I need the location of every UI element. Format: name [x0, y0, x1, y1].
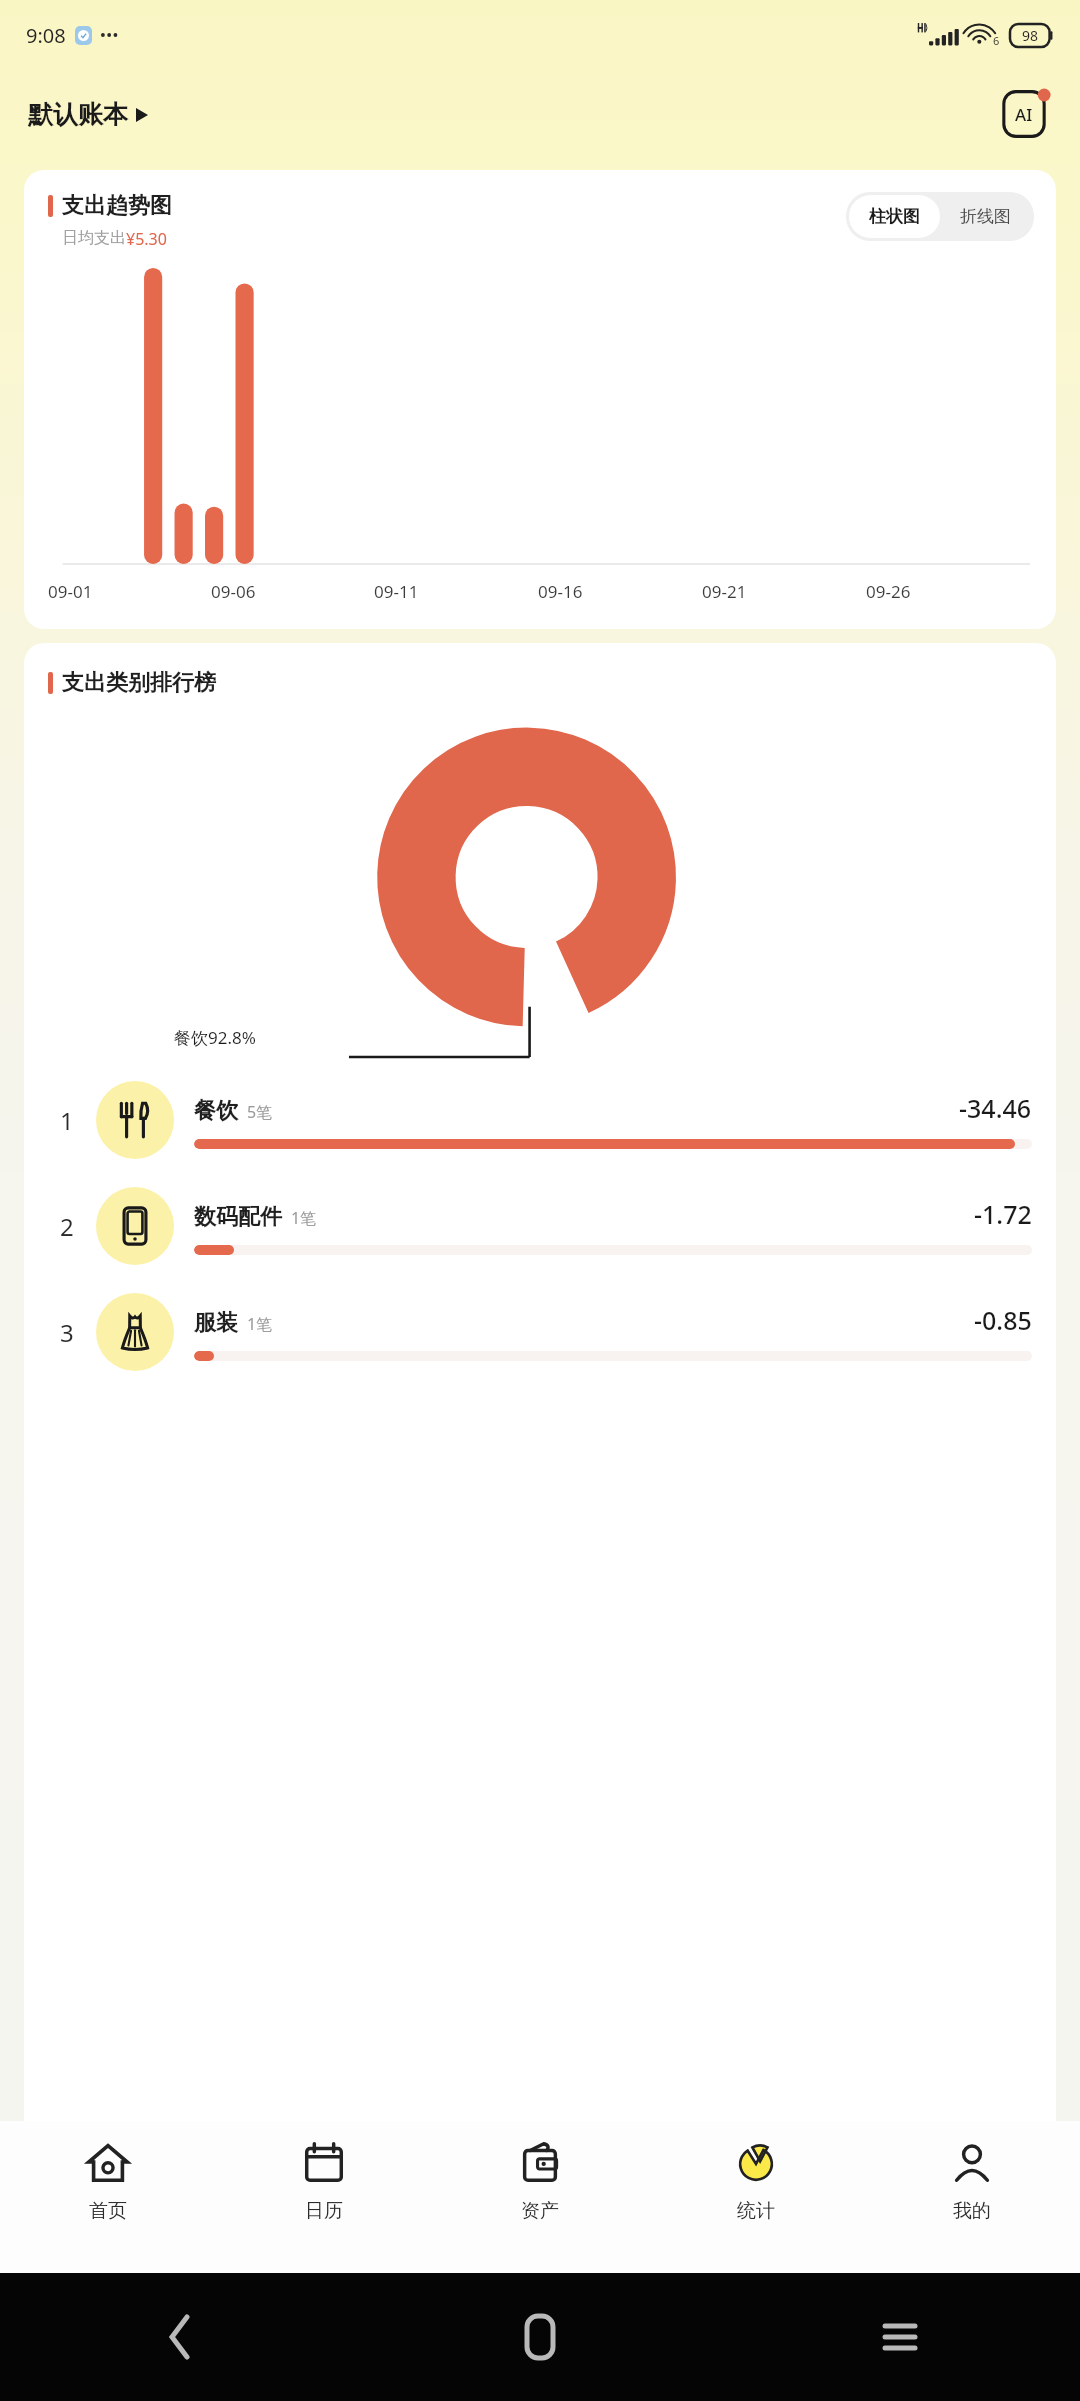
staticText: 数码配件	[194, 1203, 282, 1231]
staticText: 2	[60, 1210, 74, 1243]
staticText: 柱状图	[869, 206, 920, 227]
staticText: 1笔	[291, 1207, 317, 1229]
staticText: 统计	[737, 2199, 775, 2223]
button[interactable]: 折线图	[940, 195, 1031, 238]
staticText: 服装	[194, 1309, 238, 1337]
staticText: 6	[993, 33, 1000, 48]
staticText: -34.46	[959, 1091, 1032, 1125]
staticText: ¥5.30	[126, 228, 167, 250]
button[interactable]: AI assistant	[996, 86, 1052, 142]
staticText: 折线图	[960, 206, 1011, 227]
staticText: 3	[60, 1316, 74, 1349]
staticText: AI	[1015, 103, 1033, 126]
staticText: 支出类别排行榜	[62, 669, 216, 697]
button[interactable]: Back	[150, 2307, 210, 2367]
staticText: 09-06	[211, 580, 256, 603]
staticText: 首页	[89, 2199, 127, 2223]
staticText: 09-01	[48, 580, 93, 603]
button[interactable]: 日历	[216, 2121, 432, 2273]
button[interactable]: 首页	[0, 2121, 216, 2273]
staticText: 1	[60, 1104, 74, 1137]
staticText: 5笔	[247, 1101, 273, 1123]
staticText: 98	[1022, 26, 1039, 45]
staticText: 09-26	[866, 580, 911, 603]
button[interactable]: 2	[24, 1173, 1056, 1279]
staticText: 默认账本	[28, 99, 128, 130]
button[interactable]: 3	[24, 1279, 1056, 1385]
staticText: 日历	[305, 2199, 343, 2223]
staticText: 日均支出	[62, 228, 126, 248]
staticText: 1笔	[247, 1313, 273, 1335]
staticText: -1.72	[974, 1197, 1032, 1231]
button[interactable]: 1	[24, 1067, 1056, 1173]
staticText: 我的	[953, 2199, 991, 2223]
staticText: 9:08	[26, 22, 66, 49]
staticText: 资产	[521, 2199, 559, 2223]
button[interactable]: 柱状图	[849, 195, 940, 238]
staticText: 支出趋势图	[62, 192, 172, 220]
staticText: 餐饮92.8%	[174, 1026, 256, 1049]
button[interactable]: 统计	[648, 2121, 864, 2273]
staticText: 09-21	[702, 580, 747, 603]
staticText: 09-16	[538, 580, 583, 603]
button[interactable]: Home	[510, 2307, 570, 2367]
button[interactable]: 资产	[432, 2121, 648, 2273]
button[interactable]: 我的	[864, 2121, 1080, 2273]
staticText: -0.85	[974, 1303, 1032, 1337]
staticText: 09-11	[374, 580, 419, 603]
button[interactable]: 默认账本	[28, 99, 148, 130]
staticText: 餐饮	[194, 1097, 238, 1125]
button[interactable]: Recent apps	[870, 2307, 930, 2367]
